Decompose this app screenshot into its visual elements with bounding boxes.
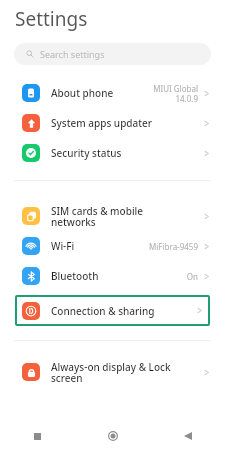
staticText: Security status: [51, 146, 203, 160]
button[interactable]: Bluetooth: [0, 261, 225, 291]
staticText: Always-on display & Lock screen: [51, 360, 203, 385]
staticText: Search settings: [40, 48, 105, 60]
staticText: Settings: [15, 6, 88, 32]
button[interactable]: Search settings: [14, 43, 211, 65]
staticText: Wi-Fi: [51, 239, 149, 253]
button[interactable]: Home: [75, 426, 150, 446]
staticText: MiFibra-9459: [149, 241, 198, 252]
staticText: On: [186, 271, 198, 282]
staticText: Connection & sharing: [51, 304, 196, 318]
staticText: Bluetooth: [51, 269, 186, 283]
staticText: System apps updater: [51, 116, 203, 130]
button[interactable]: System apps updater: [0, 108, 225, 138]
button[interactable]: Recents: [0, 426, 75, 446]
button[interactable]: Security status: [0, 138, 225, 168]
button[interactable]: About phone: [0, 78, 225, 108]
button[interactable]: Back: [150, 426, 225, 446]
staticText: SIM cards & mobile networks: [51, 204, 203, 229]
staticText: About phone: [51, 86, 153, 100]
button[interactable]: Always-on display & Lock screen: [0, 357, 225, 387]
button[interactable]: SIM cards & mobile networks: [0, 201, 225, 231]
button[interactable]: Connection & sharing: [15, 295, 210, 326]
button[interactable]: Wi-Fi: [0, 231, 225, 261]
staticText: MIUI Global 14.0.9: [153, 83, 198, 104]
